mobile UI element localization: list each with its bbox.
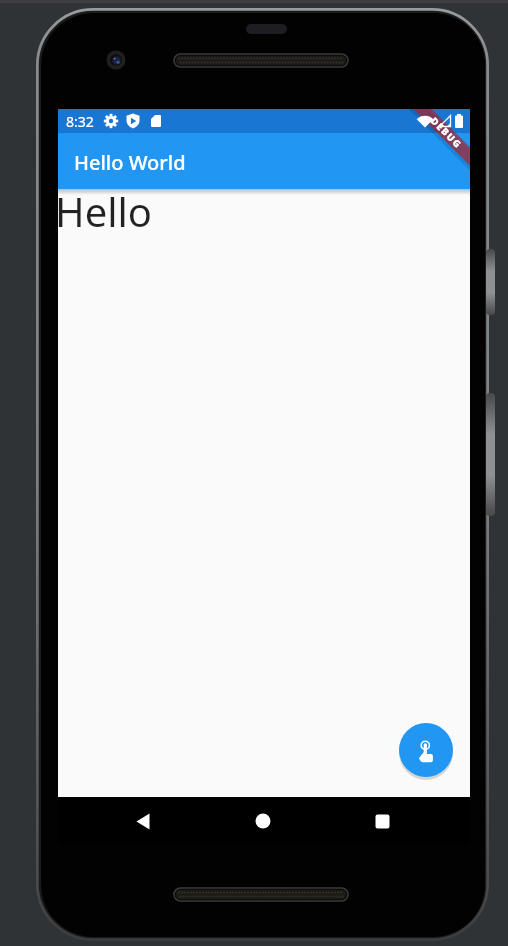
staticText: DEBUG xyxy=(428,114,465,151)
button[interactable] xyxy=(399,723,453,777)
button[interactable] xyxy=(213,797,313,845)
staticText: 8:32 xyxy=(66,112,94,131)
button[interactable] xyxy=(93,797,193,845)
staticText: Hello World xyxy=(74,149,186,176)
button[interactable] xyxy=(332,797,432,845)
staticText: Hello xyxy=(58,184,153,238)
